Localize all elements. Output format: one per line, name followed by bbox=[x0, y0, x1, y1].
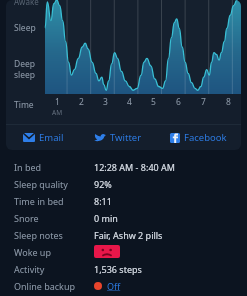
button[interactable]: Activity bbox=[14, 260, 237, 277]
button[interactable]: Facebook bbox=[155, 125, 241, 150]
button[interactable]: Twitter bbox=[80, 125, 155, 150]
staticText: 7 bbox=[201, 96, 206, 108]
staticText: Time bbox=[14, 99, 34, 111]
staticText: 92% bbox=[94, 178, 112, 190]
staticText: 5 bbox=[151, 96, 156, 108]
staticText: AM bbox=[52, 108, 63, 117]
button[interactable]: Online backup bbox=[14, 277, 237, 294]
button[interactable]: Time in bed bbox=[14, 192, 237, 209]
staticText: 1 bbox=[55, 96, 60, 108]
button[interactable]: Off bbox=[107, 280, 121, 292]
staticText: Twitter bbox=[110, 131, 142, 144]
staticText: Sleep bbox=[14, 22, 36, 34]
staticText: 3 bbox=[103, 96, 108, 108]
staticText: Awake bbox=[14, 0, 39, 7]
staticText: Online backup bbox=[14, 280, 76, 292]
staticText: Time in bed bbox=[14, 195, 64, 207]
staticText: Snore bbox=[14, 212, 39, 224]
staticText: In bed bbox=[14, 161, 42, 173]
button[interactable]: Email bbox=[6, 125, 80, 150]
staticText: Activity bbox=[14, 263, 45, 275]
staticText: 8 bbox=[226, 96, 231, 108]
staticText: Email bbox=[39, 131, 64, 144]
button[interactable]: Sleep quality bbox=[14, 175, 237, 192]
staticText: Sleep notes bbox=[14, 229, 63, 241]
button[interactable]: Sleep notes bbox=[14, 226, 237, 243]
staticText: 6 bbox=[176, 96, 181, 108]
staticText: Sleep quality bbox=[14, 178, 68, 190]
staticText: 2 bbox=[79, 96, 84, 108]
staticText: 1,536 steps bbox=[94, 263, 142, 275]
staticText: 12:28 AM - 8:40 AM bbox=[94, 161, 175, 173]
staticText: Facebook bbox=[184, 131, 227, 144]
staticText: Woke up bbox=[14, 246, 51, 258]
staticText: Deep bbox=[14, 58, 36, 70]
staticText: Fair, Ashw 2 pills bbox=[94, 229, 163, 241]
staticText: 4 bbox=[127, 96, 132, 108]
button[interactable]: Snore bbox=[14, 209, 237, 226]
staticText: Off bbox=[107, 280, 121, 292]
button[interactable]: Woke up feeling bad bbox=[94, 245, 120, 258]
staticText: sleep bbox=[14, 69, 36, 81]
staticText: 0 min bbox=[94, 212, 118, 224]
button[interactable]: Woke up bbox=[14, 243, 237, 260]
staticText: 8:11 bbox=[94, 195, 112, 207]
button[interactable]: In bed bbox=[14, 158, 237, 175]
